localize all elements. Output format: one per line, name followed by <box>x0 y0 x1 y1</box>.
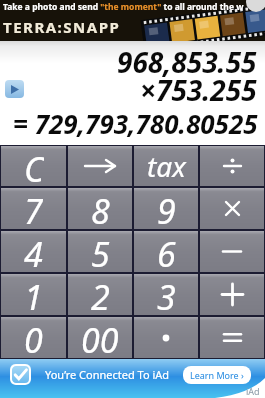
staticText: tax <box>147 147 186 185</box>
button[interactable]: 00 <box>68 317 132 358</box>
button[interactable] <box>68 146 132 186</box>
button[interactable] <box>134 317 198 358</box>
button[interactable]: 9 <box>134 188 198 229</box>
staticText: Learn More › <box>190 369 244 381</box>
staticText: 968,853.55 <box>117 43 257 81</box>
staticText: 2 <box>91 274 110 315</box>
staticText: 5 <box>91 231 110 272</box>
button[interactable]: Learn More › <box>183 366 251 384</box>
button[interactable]: 8 <box>68 188 132 229</box>
button[interactable]: tax <box>134 146 198 186</box>
staticText: 1 <box>24 274 43 315</box>
button[interactable] <box>200 317 264 358</box>
staticText: 4 <box>24 231 43 272</box>
button[interactable]: You’re Connected To iAd <box>0 359 265 398</box>
button[interactable]: 1 <box>1 274 66 315</box>
button[interactable]: Take a photo and send "the moment" to al… <box>0 0 265 41</box>
button[interactable]: 5 <box>68 231 132 272</box>
staticText: iAd <box>246 385 260 397</box>
staticText: 00 <box>81 317 119 358</box>
staticText: ×753.255 <box>140 71 257 109</box>
button[interactable]: 0 <box>1 317 66 358</box>
button[interactable]: 7 <box>1 188 66 229</box>
staticText: C <box>24 146 44 186</box>
staticText: You’re Connected To iAd <box>45 367 170 382</box>
button[interactable]: 6 <box>134 231 198 272</box>
staticText: 3 <box>157 274 176 315</box>
staticText: 0 <box>24 317 43 358</box>
staticText: Take a photo and send "the moment" to al… <box>3 1 244 13</box>
button[interactable] <box>200 231 264 272</box>
button[interactable]: C <box>1 146 66 186</box>
staticText: 6 <box>157 231 176 272</box>
staticText: 9 <box>157 188 176 229</box>
staticText: TERRA:SNAPP <box>3 17 121 37</box>
staticText: 8 <box>91 188 110 229</box>
button[interactable] <box>200 188 264 229</box>
button[interactable] <box>5 80 24 98</box>
button[interactable]: 2 <box>68 274 132 315</box>
button[interactable]: 4 <box>1 231 66 272</box>
button[interactable] <box>200 274 264 315</box>
staticText: = 729,793,780.80525 <box>13 106 258 141</box>
button[interactable] <box>200 146 264 186</box>
staticText: 7 <box>24 188 43 229</box>
button[interactable]: 3 <box>134 274 198 315</box>
